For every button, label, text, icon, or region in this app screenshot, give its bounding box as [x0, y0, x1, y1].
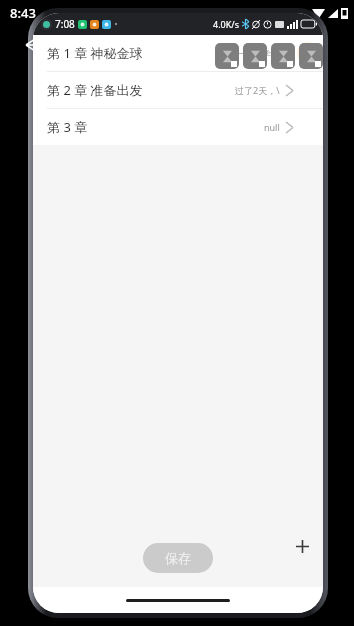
staticText: 保存 — [165, 550, 191, 566]
button[interactable]: 悬浮窗 — [215, 43, 239, 69]
staticText: 4.0K/s — [213, 18, 239, 30]
button[interactable]: 悬浮窗 — [243, 43, 267, 69]
button[interactable]: 添加章节 — [289, 533, 315, 559]
staticText: null — [264, 121, 280, 133]
staticText: 第 1 章 神秘金球 — [47, 44, 235, 62]
staticText: 8:43 — [10, 4, 36, 22]
button[interactable]: 第 1 章 神秘金球 — [33, 35, 323, 71]
staticText: 7:08 — [55, 17, 75, 31]
button[interactable]: 悬浮窗 — [271, 43, 295, 69]
button[interactable]: 保存 — [143, 543, 213, 573]
staticText: 过了2天，\ — [235, 84, 280, 96]
button[interactable]: 悬浮窗 — [299, 43, 323, 69]
button[interactable]: 第 2 章 准备出发 — [33, 72, 323, 108]
staticText: 第 3 章 — [47, 118, 264, 136]
button[interactable]: 返回 — [26, 36, 44, 54]
staticText: 第 2 章 准备出发 — [47, 81, 235, 99]
button[interactable]: 第 3 章 — [33, 109, 323, 145]
staticText: 一天放学， — [235, 48, 280, 59]
